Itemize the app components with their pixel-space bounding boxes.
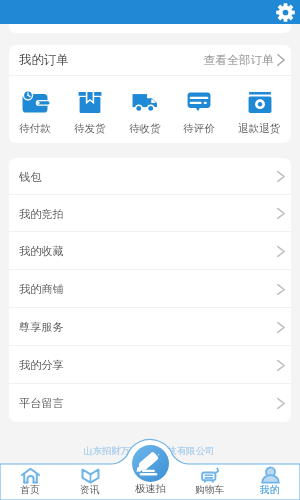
staticText: 我的 <box>260 484 280 496</box>
button[interactable]: 我的竞拍 <box>9 195 291 232</box>
staticText: 我的订单 <box>19 52 69 68</box>
button[interactable]: 待评价 <box>183 85 215 135</box>
staticText: 待付款 <box>19 122 51 135</box>
staticText: 我的收藏 <box>19 244 64 258</box>
staticText: 查看全部订单 <box>204 53 274 68</box>
button[interactable]: 首页 <box>0 464 60 500</box>
button[interactable]: 钱包 <box>9 158 291 195</box>
staticText: 平台留言 <box>19 396 64 410</box>
button[interactable]: 待收货 <box>129 85 161 135</box>
button[interactable]: 退款退货 <box>238 85 281 135</box>
staticText: 待收货 <box>129 122 161 135</box>
button[interactable]: 尊享服务 <box>9 308 291 346</box>
staticText: 山东招财万家网络科技有限公司 <box>83 445 215 457</box>
button[interactable]: Settings <box>276 3 295 22</box>
staticText: 极速拍 <box>135 482 166 495</box>
staticText: 购物车 <box>195 484 225 496</box>
staticText: 尊享服务 <box>19 320 64 334</box>
staticText: 我的竞拍 <box>19 207 64 221</box>
button[interactable]: 我的商铺 <box>9 270 291 308</box>
button[interactable]: 待付款 <box>19 85 51 135</box>
button[interactable]: 我的订单 <box>9 45 291 75</box>
staticText: 待发货 <box>74 122 106 135</box>
button[interactable]: 我的分享 <box>9 346 291 384</box>
button[interactable]: 我的 <box>240 464 300 500</box>
staticText: 我的分享 <box>19 358 64 372</box>
button[interactable]: 极速拍 <box>132 445 169 482</box>
button[interactable]: 购物车 <box>180 464 240 500</box>
staticText: 我的商铺 <box>19 282 64 296</box>
staticText: 待评价 <box>183 122 215 135</box>
staticText: 退款退货 <box>238 122 281 135</box>
button[interactable]: 我的收藏 <box>9 232 291 270</box>
button[interactable]: 资讯 <box>60 464 120 500</box>
staticText: 钱包 <box>19 170 42 184</box>
button[interactable]: 平台留言 <box>9 384 291 422</box>
staticText: 首页 <box>20 484 40 496</box>
button[interactable]: 待发货 <box>74 85 106 135</box>
staticText: 资讯 <box>80 484 100 496</box>
